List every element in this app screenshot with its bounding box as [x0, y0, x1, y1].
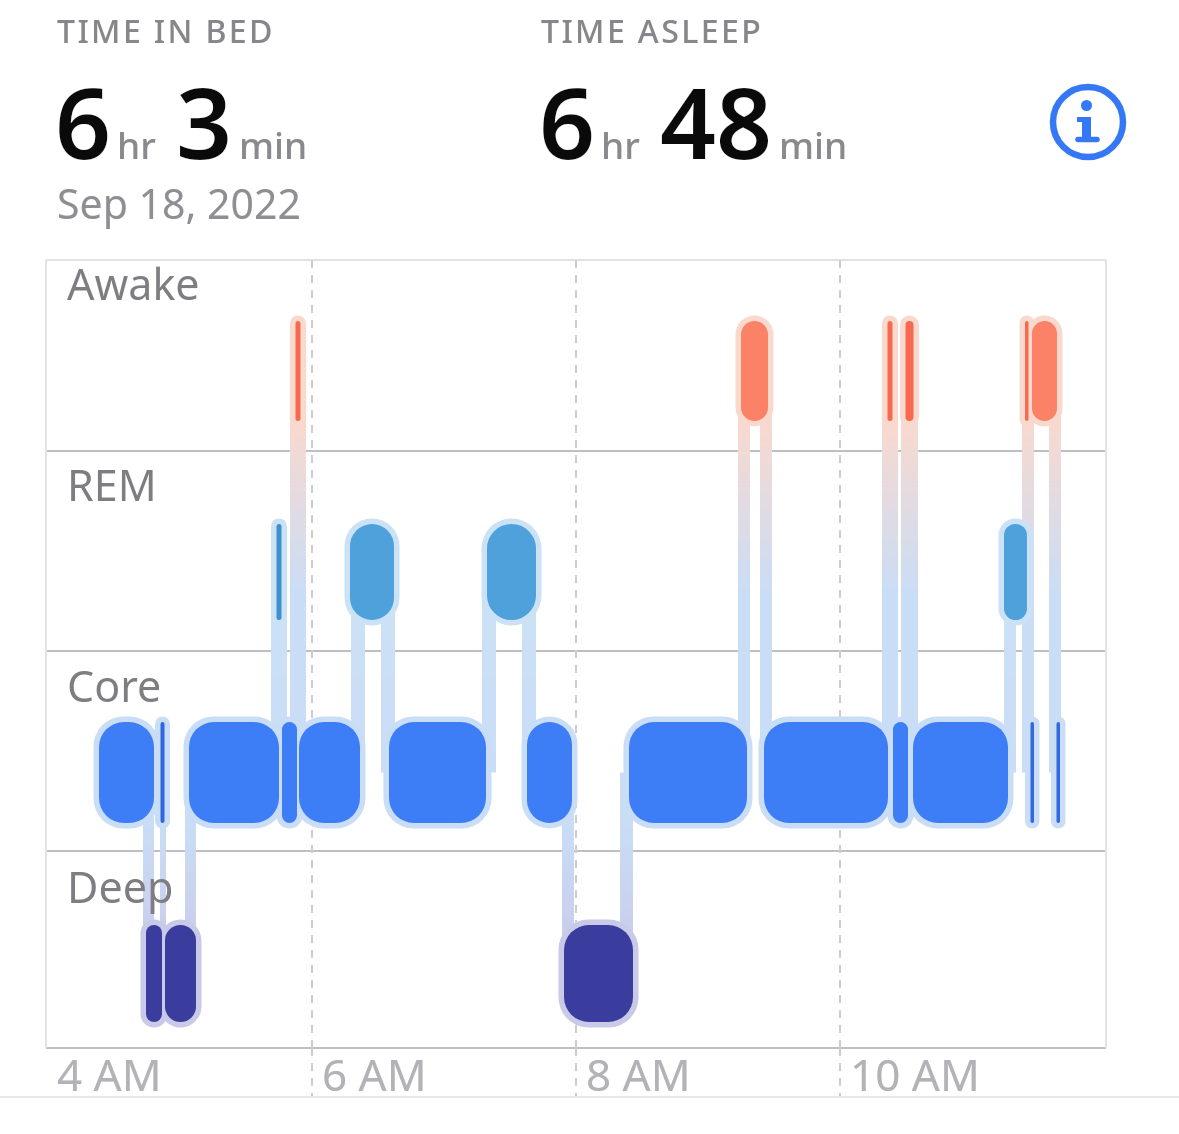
staticText: Sep 18, 2022 — [57, 175, 301, 231]
staticText: 6 — [55, 54, 112, 187]
staticText: TIME IN BED — [57, 9, 275, 53]
staticText: TIME ASLEEP — [541, 9, 764, 53]
staticText: Core — [67, 656, 162, 715]
staticText: min — [779, 119, 848, 169]
staticText: hr — [601, 119, 640, 169]
staticText: 6 AM — [322, 1044, 427, 1104]
button[interactable] — [1056, 90, 1124, 158]
staticText: 48 — [660, 54, 773, 187]
staticText: REM — [67, 455, 157, 514]
staticText: Deep — [67, 857, 174, 916]
staticText: 4 AM — [57, 1044, 162, 1104]
staticText: 10 AM — [850, 1044, 980, 1104]
staticText: hr — [117, 119, 156, 169]
staticText: min — [239, 119, 308, 169]
staticText: 8 AM — [586, 1044, 691, 1104]
staticText: 6 — [539, 54, 596, 187]
staticText: 3 — [176, 54, 233, 187]
staticText: Awake — [67, 254, 200, 313]
